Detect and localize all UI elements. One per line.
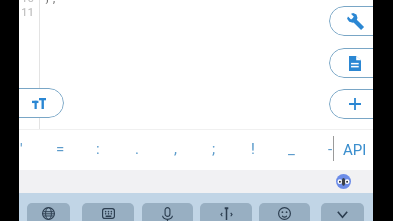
staticText: 11 [21, 4, 35, 19]
button[interactable]: Add [329, 89, 373, 119]
staticText: : [96, 140, 100, 158]
button[interactable]: Emoji [259, 203, 310, 221]
button[interactable]: , [158, 129, 192, 169]
staticText: ' [20, 140, 23, 158]
button[interactable]: _ [274, 129, 308, 169]
button[interactable]: . [120, 129, 154, 169]
staticText: - [328, 140, 333, 158]
staticText: ! [251, 140, 255, 158]
button[interactable]: Language [27, 203, 70, 221]
button[interactable]: Text size [19, 88, 64, 118]
staticText: , [174, 140, 177, 158]
button[interactable]: API [337, 130, 373, 170]
button[interactable]: ! [236, 129, 270, 169]
button[interactable]: - [313, 129, 347, 169]
button[interactable]: : [81, 129, 115, 169]
staticText: ; [212, 140, 216, 158]
staticText: . [135, 140, 139, 158]
button[interactable]: Keyboard [82, 203, 134, 221]
button[interactable]: Move cursor [200, 203, 252, 221]
button[interactable]: Build [329, 6, 373, 36]
staticText: 10 [21, 0, 35, 5]
staticText: _ [288, 140, 295, 158]
button[interactable]: = [43, 129, 77, 169]
staticText: = [56, 140, 65, 158]
button[interactable]: Voice input [142, 203, 193, 221]
button[interactable]: New file [329, 48, 373, 78]
button[interactable]: ; [197, 129, 231, 169]
button[interactable]: Hide keyboard [321, 203, 364, 221]
button[interactable]: ' [19, 129, 38, 169]
button[interactable]: Emoji suggestion [335, 173, 351, 189]
staticText: API [343, 141, 367, 159]
staticText: }; [44, 0, 58, 5]
